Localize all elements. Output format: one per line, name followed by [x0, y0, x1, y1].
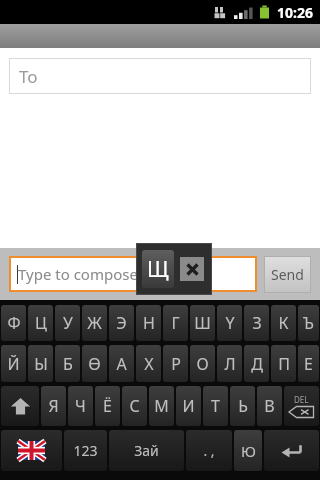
- staticText: К: [278, 312, 289, 334]
- staticText: Ц: [35, 312, 47, 334]
- button[interactable]: Я: [41, 386, 66, 426]
- staticText: С: [129, 395, 140, 417]
- button[interactable]: Й: [1, 345, 26, 382]
- button[interactable]: С: [122, 386, 147, 426]
- staticText: И: [182, 395, 195, 417]
- button[interactable]: В: [257, 386, 282, 426]
- staticText: Ы: [34, 353, 48, 375]
- staticText: . ,: [203, 441, 215, 460]
- staticText: Ё: [103, 395, 112, 417]
- staticText: Г: [171, 312, 180, 334]
- staticText: П: [278, 353, 290, 375]
- button[interactable]: М: [149, 386, 174, 426]
- staticText: М: [154, 395, 169, 417]
- button[interactable]: To: [9, 58, 311, 94]
- button[interactable]: Э: [109, 305, 134, 341]
- button[interactable]: Ф: [1, 305, 26, 341]
- staticText: Ь: [238, 395, 248, 417]
- staticText: Ф: [7, 312, 21, 334]
- button[interactable]: Shift: [1, 386, 39, 426]
- button[interactable]: Ю: [234, 430, 262, 471]
- button[interactable]: Е: [298, 345, 319, 382]
- staticText: Ш: [194, 312, 211, 334]
- button[interactable]: Х: [136, 345, 161, 382]
- staticText: З: [252, 312, 262, 334]
- button[interactable]: З: [244, 305, 269, 341]
- staticText: Э: [116, 312, 127, 334]
- button[interactable]: Ч: [68, 386, 93, 426]
- staticText: Й: [7, 353, 20, 375]
- staticText: Д: [251, 353, 263, 375]
- button[interactable]: Ж: [82, 305, 107, 341]
- button[interactable]: К: [271, 305, 296, 341]
- staticText: Ю: [241, 441, 256, 461]
- button[interactable]: Б: [55, 345, 80, 382]
- button[interactable]: Ы: [28, 345, 53, 382]
- staticText: Щ: [147, 255, 169, 284]
- button[interactable]: П: [271, 345, 296, 382]
- button[interactable]: . ,: [186, 430, 232, 471]
- staticText: Б: [63, 353, 73, 375]
- button[interactable]: Ё: [95, 386, 120, 426]
- button[interactable]: Д: [244, 345, 269, 382]
- button[interactable]: О: [190, 345, 215, 382]
- button[interactable]: Delete: [284, 386, 319, 426]
- staticText: Е: [304, 353, 313, 375]
- button[interactable]: Send: [264, 256, 311, 293]
- button[interactable]: Ъ: [298, 305, 319, 341]
- staticText: Ө: [88, 353, 101, 375]
- button[interactable]: Л: [217, 345, 242, 382]
- button[interactable]: Зай: [109, 430, 184, 471]
- button[interactable]: Ь: [230, 386, 255, 426]
- button[interactable]: Change language: [1, 430, 62, 471]
- staticText: В: [264, 395, 275, 417]
- staticText: 123: [73, 441, 98, 460]
- staticText: Ү: [225, 312, 235, 334]
- button[interactable]: Close: [180, 257, 204, 281]
- staticText: Т: [211, 395, 220, 417]
- staticText: Type to compose: [18, 264, 138, 284]
- staticText: А: [116, 353, 127, 375]
- button[interactable]: Ц: [28, 305, 53, 341]
- button[interactable]: А: [109, 345, 134, 382]
- staticText: Н: [143, 312, 155, 334]
- button[interactable]: Ү: [217, 305, 242, 341]
- staticText: Х: [144, 353, 154, 375]
- button[interactable]: Ө: [82, 345, 107, 382]
- staticText: 10:26: [277, 3, 313, 22]
- staticText: DEL: [294, 394, 309, 405]
- button[interactable]: Щ: [142, 250, 174, 288]
- staticText: У: [63, 312, 73, 334]
- staticText: Ъ: [303, 312, 314, 334]
- staticText: О: [196, 353, 209, 375]
- button[interactable]: 123: [64, 430, 107, 471]
- button[interactable]: Р: [163, 345, 188, 382]
- staticText: Л: [224, 353, 236, 375]
- button[interactable]: Type to compose: [9, 256, 257, 292]
- staticText: To: [19, 65, 38, 88]
- button[interactable]: У: [55, 305, 80, 341]
- staticText: Ж: [87, 312, 102, 334]
- button[interactable]: И: [176, 386, 201, 426]
- button[interactable]: Ш: [190, 305, 215, 341]
- button[interactable]: Enter: [264, 430, 319, 471]
- button[interactable]: Т: [203, 386, 228, 426]
- button[interactable]: Г: [163, 305, 188, 341]
- staticText: Р: [171, 353, 181, 375]
- button[interactable]: Н: [136, 305, 161, 341]
- staticText: Send: [271, 265, 304, 284]
- staticText: Зай: [134, 441, 159, 460]
- staticText: Ч: [75, 395, 86, 417]
- staticText: Я: [48, 395, 59, 417]
